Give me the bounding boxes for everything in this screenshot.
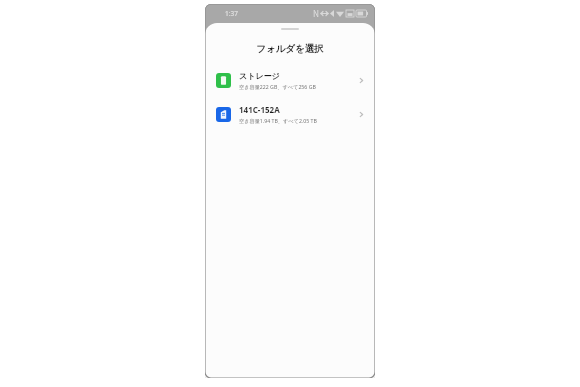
button[interactable]: 141C-152A [205, 101, 375, 127]
staticText: ストレージ [239, 71, 280, 81]
staticText: フォルダを選択 [205, 43, 375, 55]
staticText: 1:37 [225, 9, 238, 18]
button[interactable]: ストレージ [205, 67, 375, 93]
staticText: 141C-152A [239, 104, 280, 115]
staticText: 空き容量222 GB、すべて256 GB [239, 83, 316, 90]
staticText: 空き容量1.94 TB、すべて2.05 TB [239, 117, 317, 124]
